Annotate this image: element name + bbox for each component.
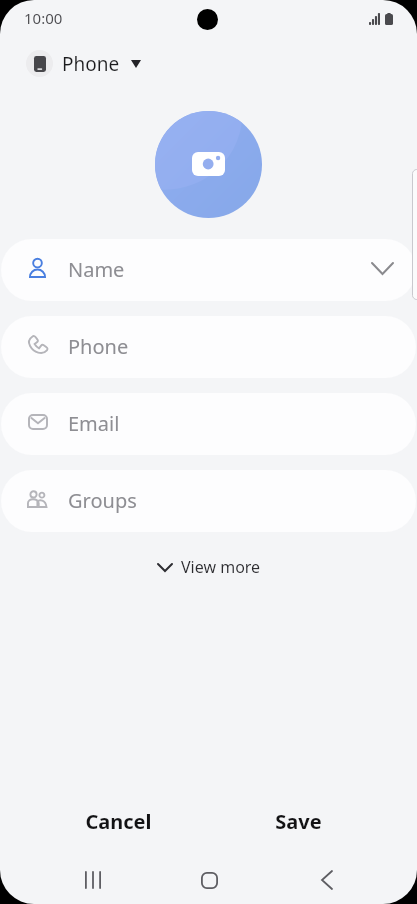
staticText: Phone — [68, 333, 129, 360]
staticText: View more — [181, 556, 261, 578]
staticText: Phone — [62, 51, 120, 77]
button[interactable]: Home — [151, 856, 268, 904]
staticText: Name — [68, 256, 125, 283]
button[interactable]: Recents — [35, 856, 151, 904]
staticText: Email — [68, 410, 120, 437]
button[interactable]: View more — [144, 548, 275, 586]
button[interactable]: Back — [268, 856, 385, 904]
staticText: 10:00 — [24, 8, 63, 28]
button[interactable]: Cancel — [28, 801, 208, 841]
button[interactable]: Add photo — [155, 111, 262, 218]
button[interactable]: Email — [1, 393, 416, 455]
staticText: Cancel — [85, 808, 152, 835]
button[interactable]: Groups — [1, 470, 416, 532]
button[interactable]: Phone — [1, 316, 416, 378]
staticText: Groups — [68, 487, 137, 514]
button[interactable]: Save — [208, 801, 389, 841]
staticText: Save — [275, 808, 322, 835]
button[interactable]: Name — [1, 239, 416, 301]
button[interactable]: Phone — [22, 47, 145, 80]
